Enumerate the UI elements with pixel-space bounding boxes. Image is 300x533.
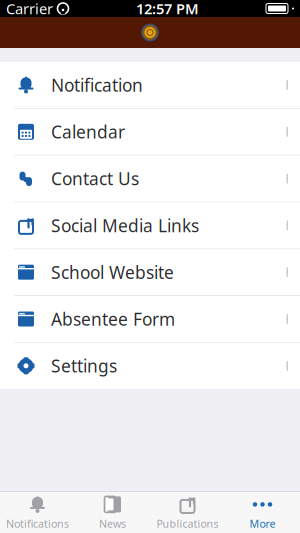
button[interactable]: Publications [150,492,225,533]
button[interactable]: Notifications [0,492,75,533]
staticText: Carrier [6,0,53,18]
button[interactable]: More [225,492,300,533]
button[interactable]: Contact Us [0,156,300,202]
staticText: Notification [51,73,143,96]
staticText: 12:57 PM [136,0,199,18]
staticText: School Website [51,261,174,284]
button[interactable]: Settings [0,343,300,389]
staticText: Notifications [6,516,69,531]
staticText: Social Media Links [51,214,199,237]
button[interactable]: Absentee Form [0,296,300,343]
staticText: News [99,516,126,531]
button[interactable]: Calendar [0,109,300,156]
staticText: Contact Us [51,167,139,190]
staticText: More [249,516,275,531]
staticText: Settings [51,354,117,377]
button[interactable]: School Website [0,249,300,296]
button[interactable]: Social Media Links [0,202,300,249]
button[interactable]: Notification [0,62,300,109]
staticText: Absentee Form [51,307,175,330]
staticText: Calendar [51,120,125,143]
staticText: Publications [156,516,218,531]
button[interactable]: News [75,492,150,533]
